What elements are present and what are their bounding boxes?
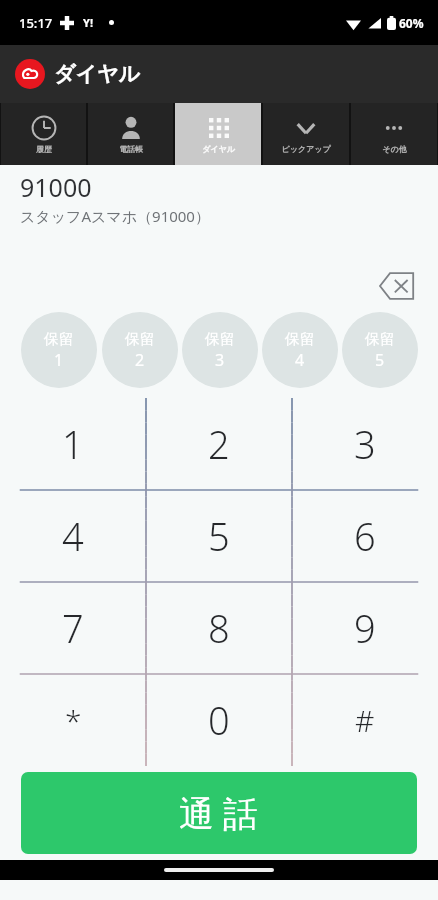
button[interactable]: ダイヤル: [175, 103, 261, 165]
staticText: 4: [295, 349, 305, 371]
button[interactable]: その他: [351, 103, 437, 165]
staticText: 9: [354, 602, 376, 654]
staticText: 3: [354, 418, 376, 470]
staticText: 6: [354, 510, 376, 562]
staticText: 8: [208, 602, 230, 654]
button[interactable]: 保留: [262, 312, 338, 388]
button[interactable]: 9: [292, 582, 438, 674]
staticText: 保留: [205, 330, 235, 349]
staticText: 保留: [44, 330, 74, 349]
button[interactable]: 7: [0, 582, 146, 674]
button[interactable]: *: [0, 674, 146, 766]
staticText: 7: [62, 602, 84, 654]
button[interactable]: 8: [146, 582, 292, 674]
staticText: ピックアップ: [281, 144, 331, 154]
button[interactable]: 保留: [21, 312, 97, 388]
button[interactable]: 3: [292, 398, 438, 490]
staticText: スタッフAスマホ（91000）: [20, 206, 210, 226]
button[interactable]: 5: [146, 490, 292, 582]
staticText: ダイヤル: [202, 144, 235, 154]
staticText: 1: [54, 349, 64, 371]
button[interactable]: 保留: [342, 312, 418, 388]
button[interactable]: 履歴: [1, 103, 86, 165]
button[interactable]: 保留: [102, 312, 178, 388]
button[interactable]: App logo: [15, 59, 45, 89]
button[interactable]: 1: [0, 398, 146, 490]
button[interactable]: 4: [0, 490, 146, 582]
staticText: #: [355, 700, 375, 741]
button[interactable]: 通 話: [21, 772, 417, 854]
button[interactable]: 0: [146, 674, 292, 766]
staticText: 15:17: [19, 14, 53, 32]
staticText: 3: [215, 349, 225, 371]
staticText: 保留: [285, 330, 315, 349]
staticText: その他: [382, 144, 407, 154]
staticText: 保留: [365, 330, 395, 349]
button[interactable]: 2: [146, 398, 292, 490]
button[interactable]: #: [292, 674, 438, 766]
button[interactable]: 6: [292, 490, 438, 582]
staticText: 通 話: [179, 789, 259, 837]
staticText: Y!: [83, 15, 93, 30]
staticText: 保留: [125, 330, 155, 349]
button[interactable]: ピックアップ: [263, 103, 349, 165]
staticText: 2: [208, 418, 230, 470]
staticText: 2: [135, 349, 145, 371]
staticText: 5: [375, 349, 385, 371]
staticText: 60%: [399, 15, 424, 31]
staticText: 0: [208, 694, 230, 746]
button[interactable]: 電話帳: [88, 103, 173, 165]
staticText: 5: [208, 510, 230, 562]
staticText: ダイヤル: [54, 61, 140, 87]
staticText: 履歴: [36, 144, 52, 154]
staticText: 4: [62, 510, 84, 562]
staticText: 1: [62, 418, 84, 470]
staticText: *: [65, 700, 82, 741]
button[interactable]: 保留: [182, 312, 258, 388]
staticText: 電話帳: [119, 144, 143, 154]
staticText: 91000: [20, 170, 92, 204]
button[interactable]: Backspace: [376, 264, 420, 308]
